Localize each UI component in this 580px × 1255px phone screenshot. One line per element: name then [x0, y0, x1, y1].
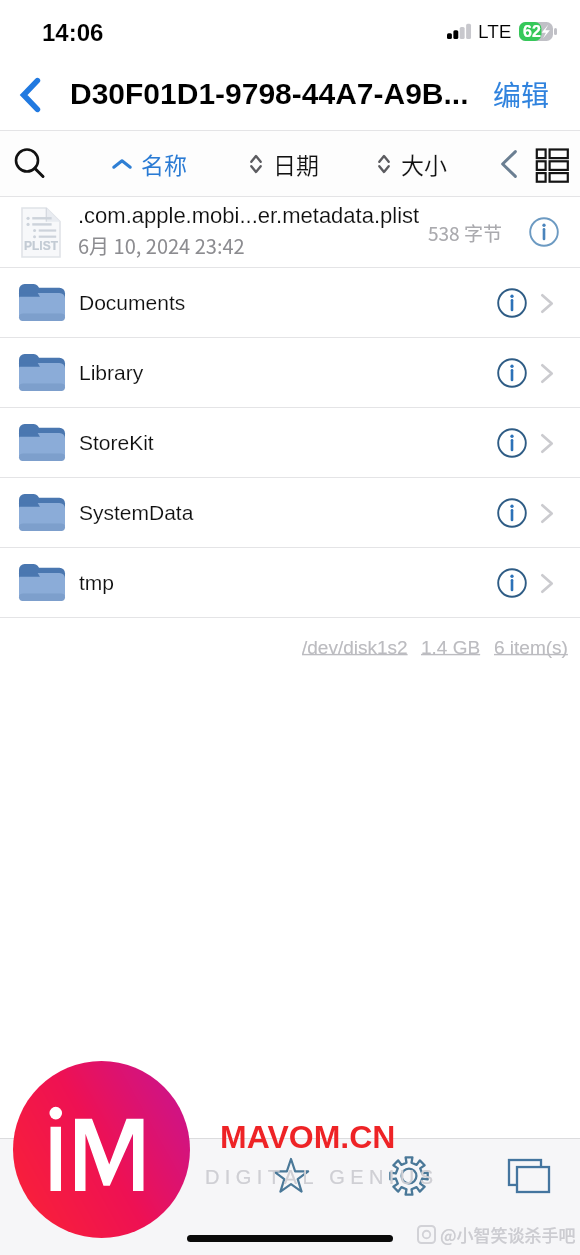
staticText: 日期: [273, 147, 319, 180]
staticText: /dev/disk1s2: [302, 637, 408, 658]
button[interactable]: 编辑: [493, 74, 550, 115]
button[interactable]: Open: [534, 290, 560, 316]
button[interactable]: Favorites: [263, 1149, 319, 1205]
staticText: @小智笑谈杀手吧: [440, 1222, 576, 1247]
staticText: Documents: [79, 291, 186, 314]
staticText: tmp: [79, 571, 115, 594]
staticText: MAVOM.CN: [220, 1119, 396, 1155]
button[interactable]: Documents: [0, 268, 580, 337]
staticText: LTE: [478, 21, 512, 42]
button[interactable]: Collapse: [492, 147, 526, 181]
button[interactable]: SystemData: [0, 478, 580, 547]
staticText: DIGITAL GENIUS: [205, 1166, 439, 1188]
button[interactable]: Library: [0, 338, 580, 407]
staticText: StoreKit: [79, 431, 154, 454]
button[interactable]: Info: [490, 421, 534, 465]
button[interactable]: 名称: [112, 147, 187, 180]
button[interactable]: tmp: [0, 548, 580, 617]
staticText: .com.apple.mobi...er.metadata.plist: [78, 203, 420, 228]
staticText: 62: [523, 23, 541, 41]
button[interactable]: Info: [490, 561, 534, 605]
button[interactable]: Settings: [381, 1149, 437, 1205]
staticText: 538 字节: [428, 219, 502, 247]
button[interactable]: PLIST: [0, 197, 580, 267]
button[interactable]: Open: [534, 570, 560, 596]
button[interactable]: 大小: [378, 147, 447, 180]
staticText: Library: [79, 361, 144, 384]
staticText: 大小: [401, 147, 447, 180]
staticText: D30F01D1-9798-44A7-A9B...: [70, 77, 469, 111]
button[interactable]: Back: [2, 67, 58, 123]
staticText: SystemData: [79, 501, 194, 524]
button[interactable]: Info: [490, 351, 534, 395]
staticText: 6月 10, 2024 23:42: [78, 231, 245, 260]
button[interactable]: Info: [522, 210, 566, 254]
staticText: 1.4 GB: [421, 637, 481, 658]
button[interactable]: Info: [490, 491, 534, 535]
button[interactable]: Search: [8, 141, 54, 187]
button[interactable]: 日期: [250, 147, 319, 180]
button[interactable]: Info: [490, 281, 534, 325]
staticText: 14:06: [42, 19, 104, 46]
staticText: 6 item(s): [494, 637, 568, 658]
staticText: PLIST: [24, 239, 59, 252]
button[interactable]: StoreKit: [0, 408, 580, 477]
button[interactable]: Open: [534, 430, 560, 456]
staticText: 名称: [141, 147, 187, 180]
button[interactable]: Open: [534, 500, 560, 526]
button[interactable]: List view: [532, 144, 572, 184]
button[interactable]: Open: [534, 360, 560, 386]
button[interactable]: Windows: [501, 1149, 557, 1205]
